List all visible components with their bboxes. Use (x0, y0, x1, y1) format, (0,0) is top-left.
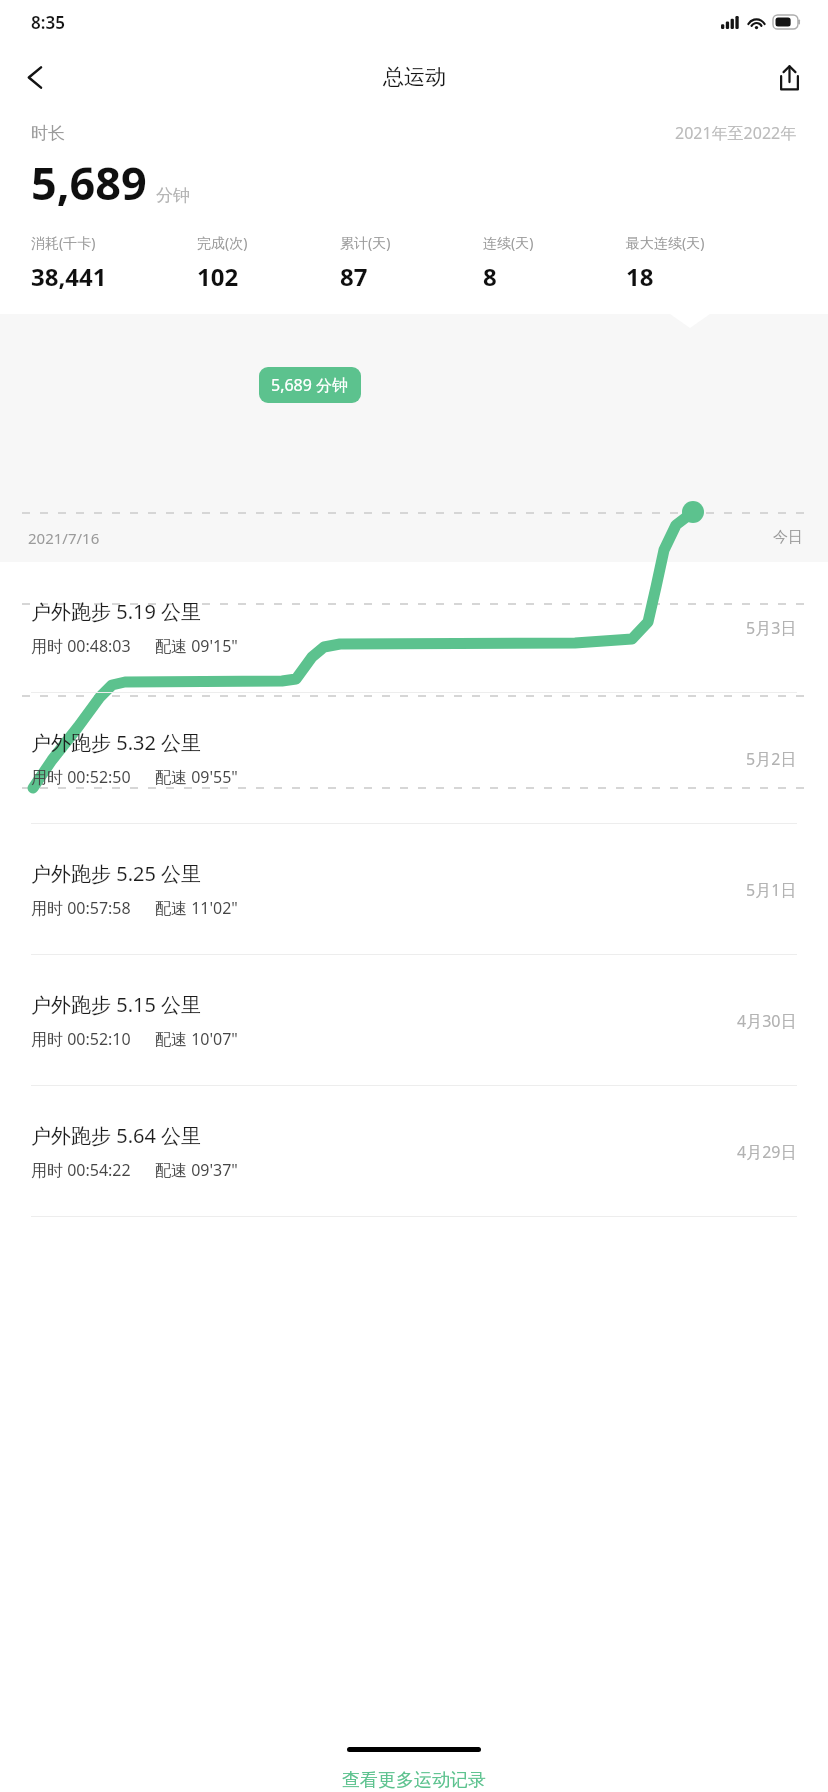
staticText: 查看更多运动记录 (342, 1769, 486, 1792)
staticText: 配速 09'15" (155, 635, 238, 657)
staticText: 连续(天) (483, 233, 534, 252)
staticText: 18 (626, 260, 654, 293)
staticText: 今日 (773, 528, 803, 547)
staticText: 用时 00:52:50 (31, 766, 131, 788)
staticText: 消耗(千卡) (31, 233, 96, 252)
staticText: 102 (197, 260, 239, 293)
button[interactable]: 户外跑步 5.19 公里 (0, 562, 828, 693)
button[interactable]: Back (6, 48, 64, 106)
button[interactable]: 户外跑步 5.25 公里 (0, 824, 828, 955)
staticText: 总运动 (383, 64, 446, 90)
button[interactable]: 户外跑步 5.32 公里 (0, 693, 828, 824)
button[interactable]: 户外跑步 5.15 公里 (0, 955, 828, 1086)
staticText: 5,689 分钟 (271, 374, 349, 396)
staticText: 户外跑步 5.32 公里 (31, 729, 202, 756)
staticText: 5月2日 (746, 748, 797, 770)
staticText: 用时 00:54:22 (31, 1159, 131, 1181)
staticText: 配速 11'02" (155, 897, 238, 919)
staticText: 用时 00:52:10 (31, 1028, 131, 1050)
staticText: 配速 09'55" (155, 766, 238, 788)
staticText: 配速 10'07" (155, 1028, 238, 1050)
staticText: 8:35 (31, 11, 65, 34)
staticText: 87 (340, 260, 368, 293)
button[interactable]: 户外跑步 5.64 公里 (0, 1086, 828, 1217)
staticText: 完成(次) (197, 233, 248, 252)
staticText: 累计(天) (340, 233, 391, 252)
staticText: 2021年至2022年 (675, 122, 797, 144)
staticText: 4月30日 (737, 1010, 797, 1032)
staticText: 户外跑步 5.15 公里 (31, 991, 202, 1018)
staticText: 4月29日 (737, 1141, 797, 1163)
staticText: 5,689 (31, 152, 147, 213)
staticText: 用时 00:48:03 (31, 635, 131, 657)
staticText: 2021/7/16 (28, 528, 100, 548)
staticText: 分钟 (156, 185, 190, 206)
staticText: 时长 (31, 123, 65, 144)
staticText: 5月3日 (746, 617, 797, 639)
button[interactable]: 查看更多运动记录 (0, 1769, 828, 1792)
staticText: 最大连续(天) (626, 233, 705, 252)
staticText: 5月1日 (746, 879, 797, 901)
staticText: 户外跑步 5.25 公里 (31, 860, 202, 887)
staticText: 用时 00:57:58 (31, 897, 131, 919)
staticText: 户外跑步 5.19 公里 (31, 598, 202, 625)
staticText: 8 (483, 260, 497, 293)
staticText: 户外跑步 5.64 公里 (31, 1122, 202, 1149)
staticText: 配速 09'37" (155, 1159, 238, 1181)
staticText: 38,441 (31, 260, 107, 293)
button[interactable]: Share (760, 48, 818, 106)
